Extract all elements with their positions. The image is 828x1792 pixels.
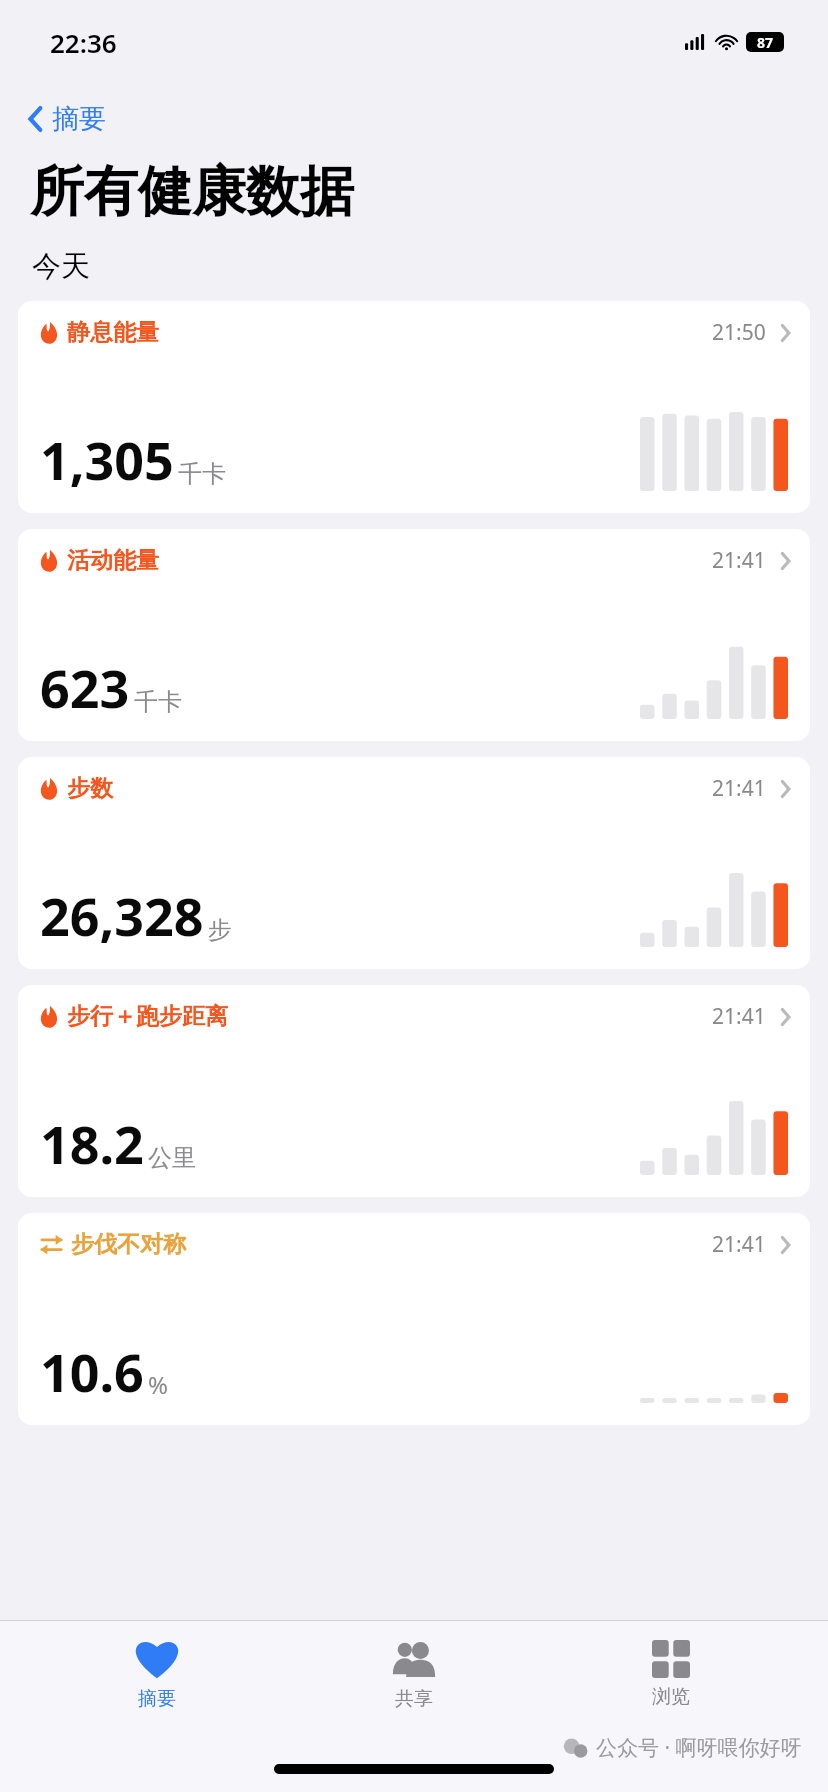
staticText: 公里 [148, 1143, 196, 1173]
staticText: 千卡 [178, 459, 226, 489]
staticText: 摘要 [52, 102, 106, 136]
button[interactable]: 步伐不对称 [18, 1213, 810, 1425]
button[interactable]: 静息能量 [18, 301, 810, 513]
button[interactable]: 浏览 [571, 1629, 771, 1709]
staticText: 21:50 [712, 318, 766, 347]
button[interactable]: 步数 [18, 757, 810, 969]
staticText: 26,328 [40, 880, 204, 951]
staticText: 公众号 · 啊呀喂你好呀 [596, 1733, 802, 1762]
button[interactable]: 步行＋跑步距离 [18, 985, 810, 1197]
button[interactable]: 摘要 [57, 1629, 257, 1711]
staticText: 22:36 [50, 25, 117, 60]
staticText: 21:41 [712, 1230, 766, 1259]
button[interactable]: 活动能量 [18, 529, 810, 741]
staticText: 活动能量 [67, 546, 159, 575]
staticText: 静息能量 [67, 318, 159, 347]
staticText: 今天 [32, 248, 90, 285]
staticText: 18.2 [40, 1108, 144, 1179]
staticText: 1,305 [40, 424, 174, 495]
staticText: 摘要 [138, 1687, 176, 1711]
staticText: 21:41 [712, 774, 766, 803]
staticText: 千卡 [134, 687, 182, 717]
staticText: 10.6 [40, 1336, 144, 1407]
staticText: 步 [208, 915, 232, 945]
staticText: 步数 [67, 774, 113, 803]
staticText: 步行＋跑步距离 [67, 1002, 228, 1031]
staticText: 87 [757, 33, 774, 52]
staticText: % [148, 1368, 168, 1401]
staticText: 步伐不对称 [71, 1230, 186, 1259]
staticText: 623 [40, 652, 130, 723]
staticText: 所有健康数据 [30, 158, 354, 226]
staticText: 21:41 [712, 1002, 766, 1031]
button[interactable]: 摘要 [22, 98, 112, 140]
button[interactable]: 共享 [314, 1629, 514, 1711]
staticText: 21:41 [712, 546, 766, 575]
staticText: 浏览 [652, 1685, 690, 1709]
staticText: 共享 [395, 1687, 433, 1711]
